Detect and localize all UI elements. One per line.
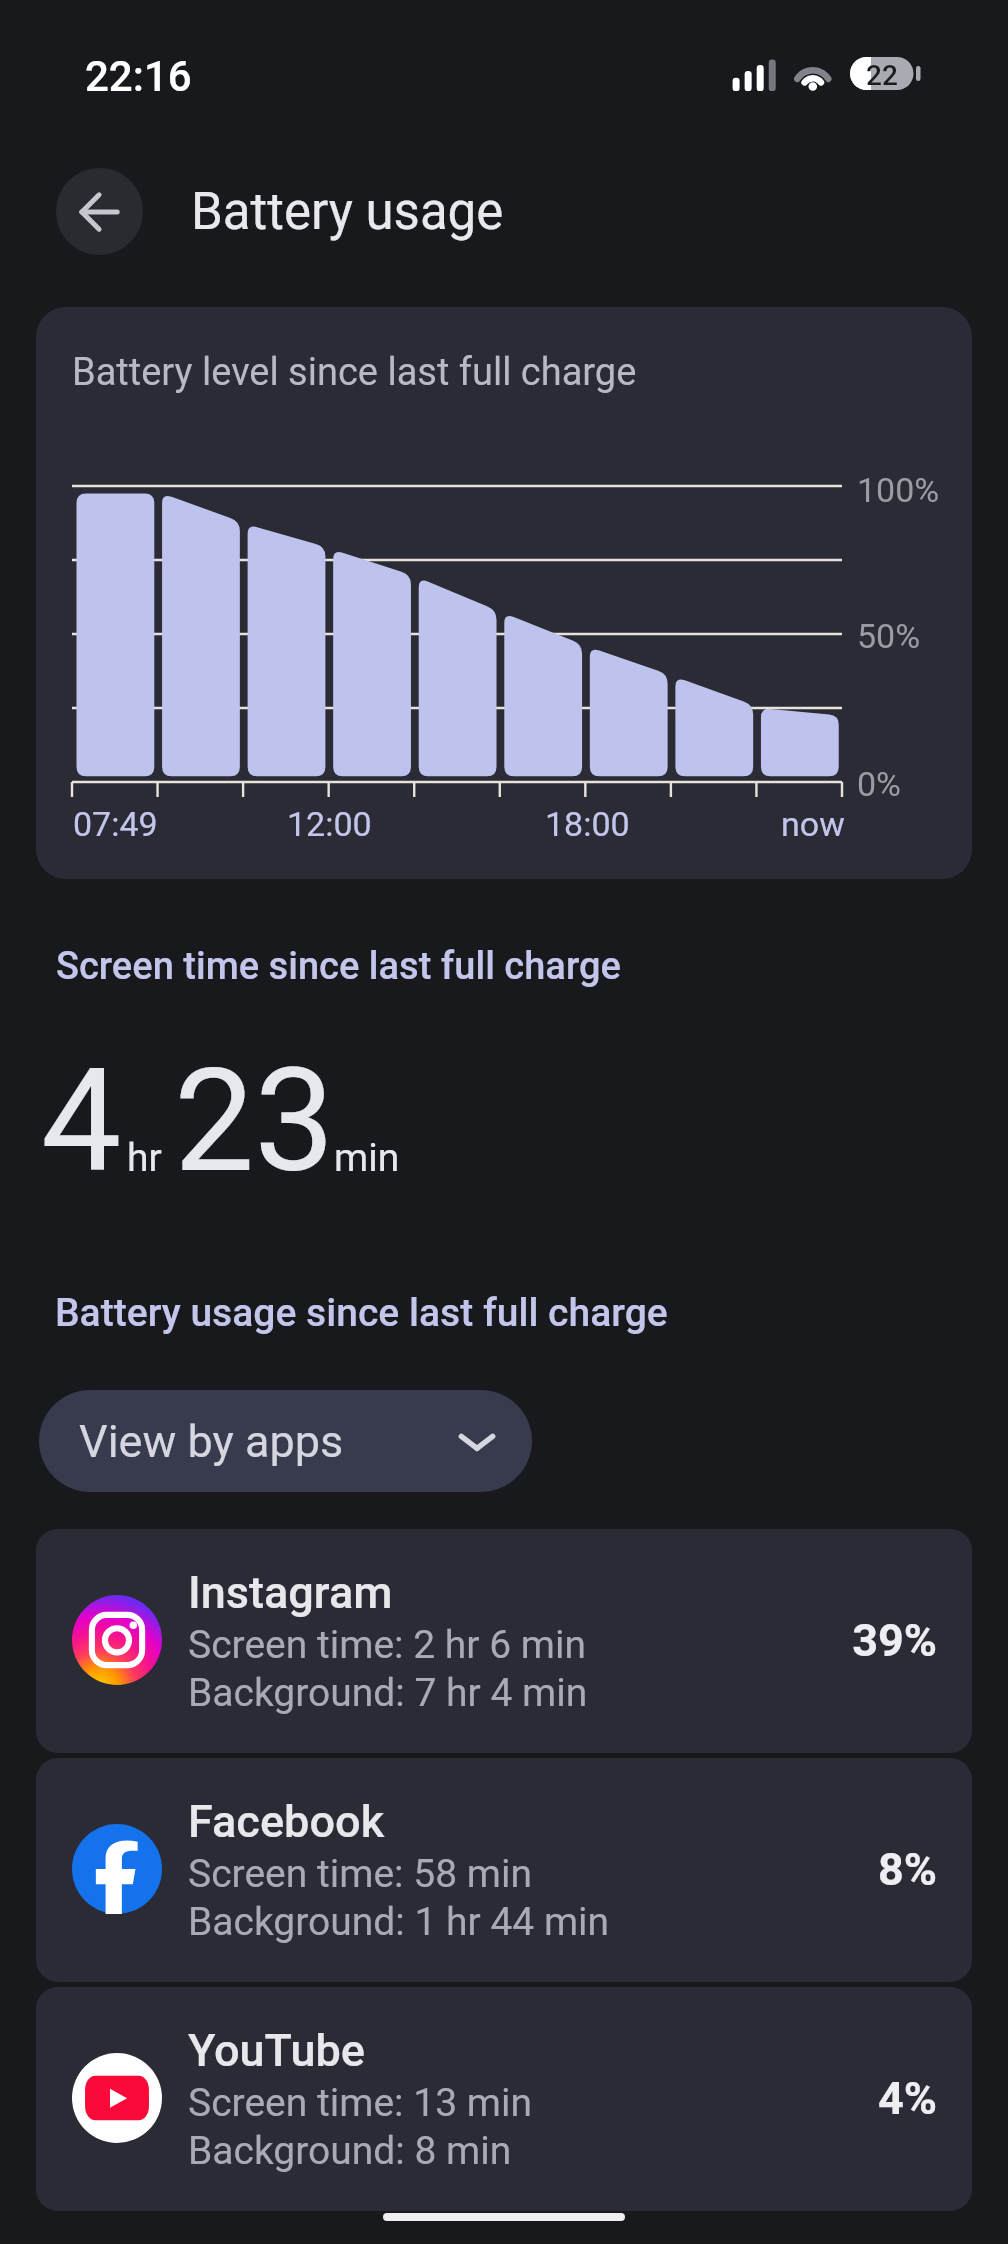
staticText: Background: 7 hr 4 min (188, 1670, 588, 1716)
staticText: Battery usage since last full charge (55, 1290, 668, 1336)
button[interactable]: Back (56, 168, 143, 255)
staticText: 07:49 (73, 804, 158, 844)
staticText: Screen time: 13 min (188, 2080, 532, 2126)
staticText: Screen time since last full charge (56, 944, 621, 989)
staticText: Instagram (188, 1566, 393, 1619)
staticText: Battery usage (191, 182, 504, 242)
staticText: 22:16 (85, 52, 192, 101)
staticText: now (781, 804, 845, 844)
staticText: Screen time: 58 min (188, 1851, 532, 1897)
staticText: 12:00 (287, 804, 372, 844)
staticText: 39% (36, 1614, 937, 1667)
staticText: View by apps (79, 1415, 344, 1468)
staticText: YouTube (188, 2024, 366, 2077)
staticText: 18:00 (545, 804, 630, 844)
staticText: hr (127, 1135, 162, 1181)
staticText: Facebook (188, 1795, 385, 1848)
staticText: 8% (36, 1843, 937, 1896)
staticText: 4% (36, 2072, 937, 2125)
staticText: min (334, 1135, 400, 1181)
staticText: Battery level since last full charge (72, 350, 637, 395)
staticText: Background: 1 hr 44 min (188, 1899, 610, 1945)
staticText: 23 (174, 1037, 335, 1205)
button[interactable]: Facebook (36, 1758, 972, 1982)
staticText: 4 (41, 1037, 122, 1205)
staticText: 0% (857, 764, 902, 804)
staticText: Background: 8 min (188, 2128, 512, 2174)
button[interactable]: View by apps (39, 1390, 532, 1492)
button[interactable]: YouTube (36, 1987, 972, 2211)
button[interactable]: Instagram (36, 1529, 972, 1753)
staticText: Screen time: 2 hr 6 min (188, 1622, 587, 1668)
staticText: 50% (857, 616, 921, 656)
staticText: 100% (857, 470, 940, 510)
staticText: 22 (866, 59, 898, 92)
